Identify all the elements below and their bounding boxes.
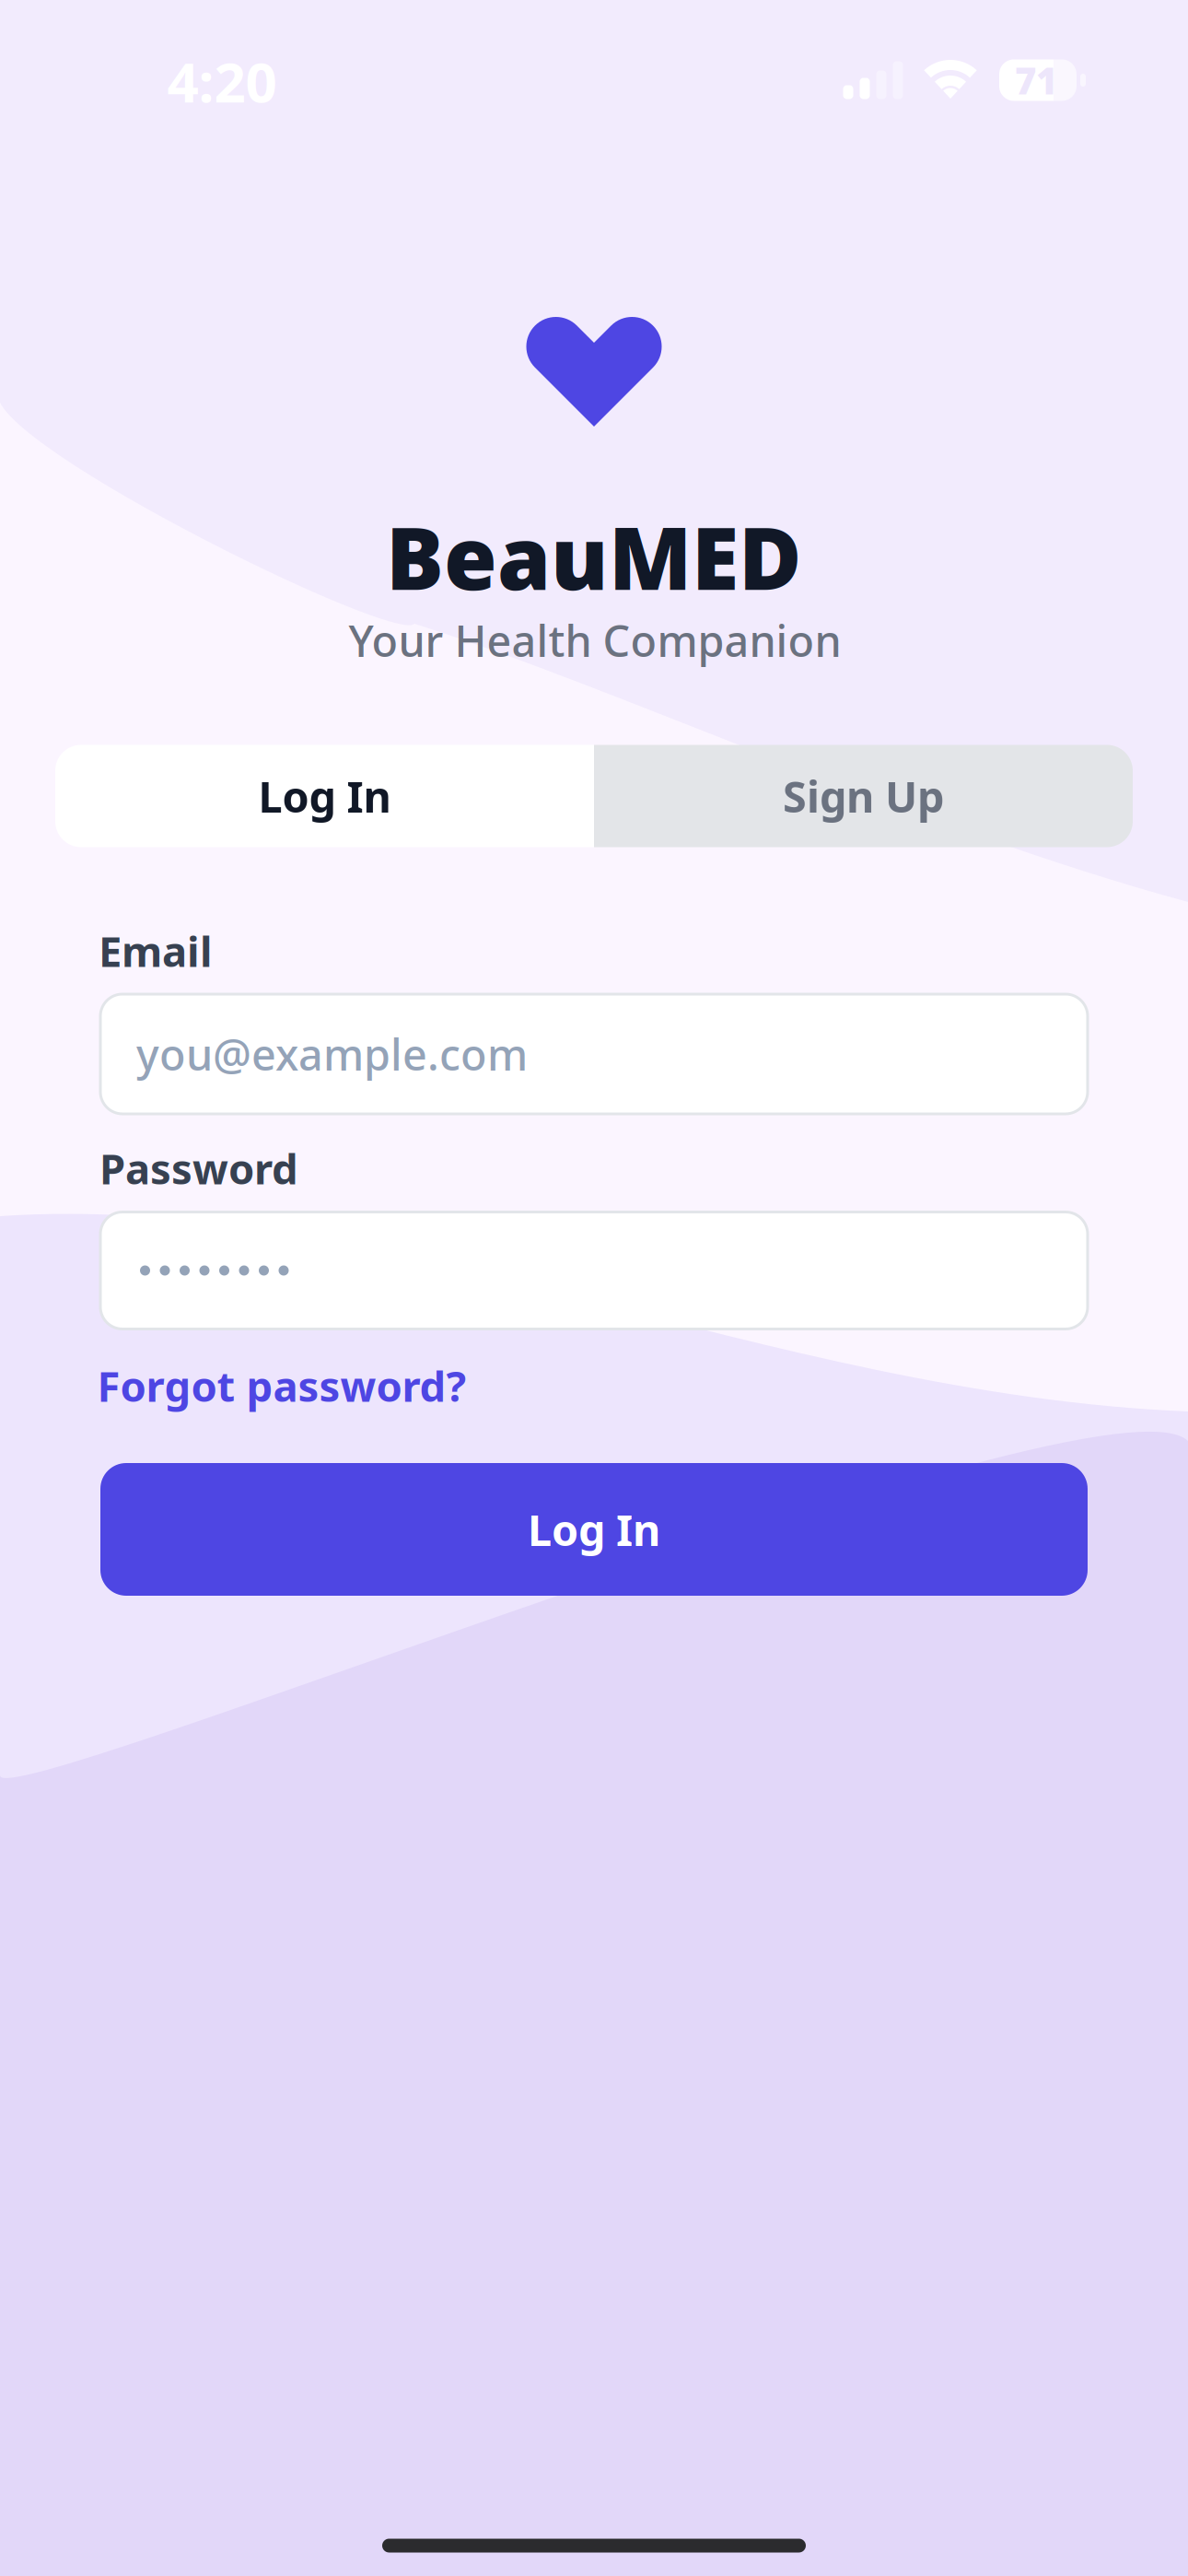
staticText: Email [99, 923, 213, 979]
staticText: you@example.com [136, 1025, 528, 1083]
button[interactable]: Forgot password? [97, 1358, 466, 1413]
staticText: 4:20 [167, 44, 277, 118]
button[interactable]: Log In [100, 1463, 1088, 1596]
staticText: Sign Up [783, 767, 944, 825]
staticText: Log In [258, 767, 391, 825]
staticText: Password [99, 1140, 298, 1196]
staticText: BeauMED [386, 499, 802, 614]
staticText: 71 [1015, 56, 1057, 105]
button[interactable]: Sign Up [594, 745, 1133, 847]
button[interactable]: Log In [55, 745, 594, 847]
staticText: Log In [528, 1501, 660, 1558]
staticText: Forgot password? [97, 1358, 466, 1413]
staticText: Your Health Companion [349, 612, 841, 669]
